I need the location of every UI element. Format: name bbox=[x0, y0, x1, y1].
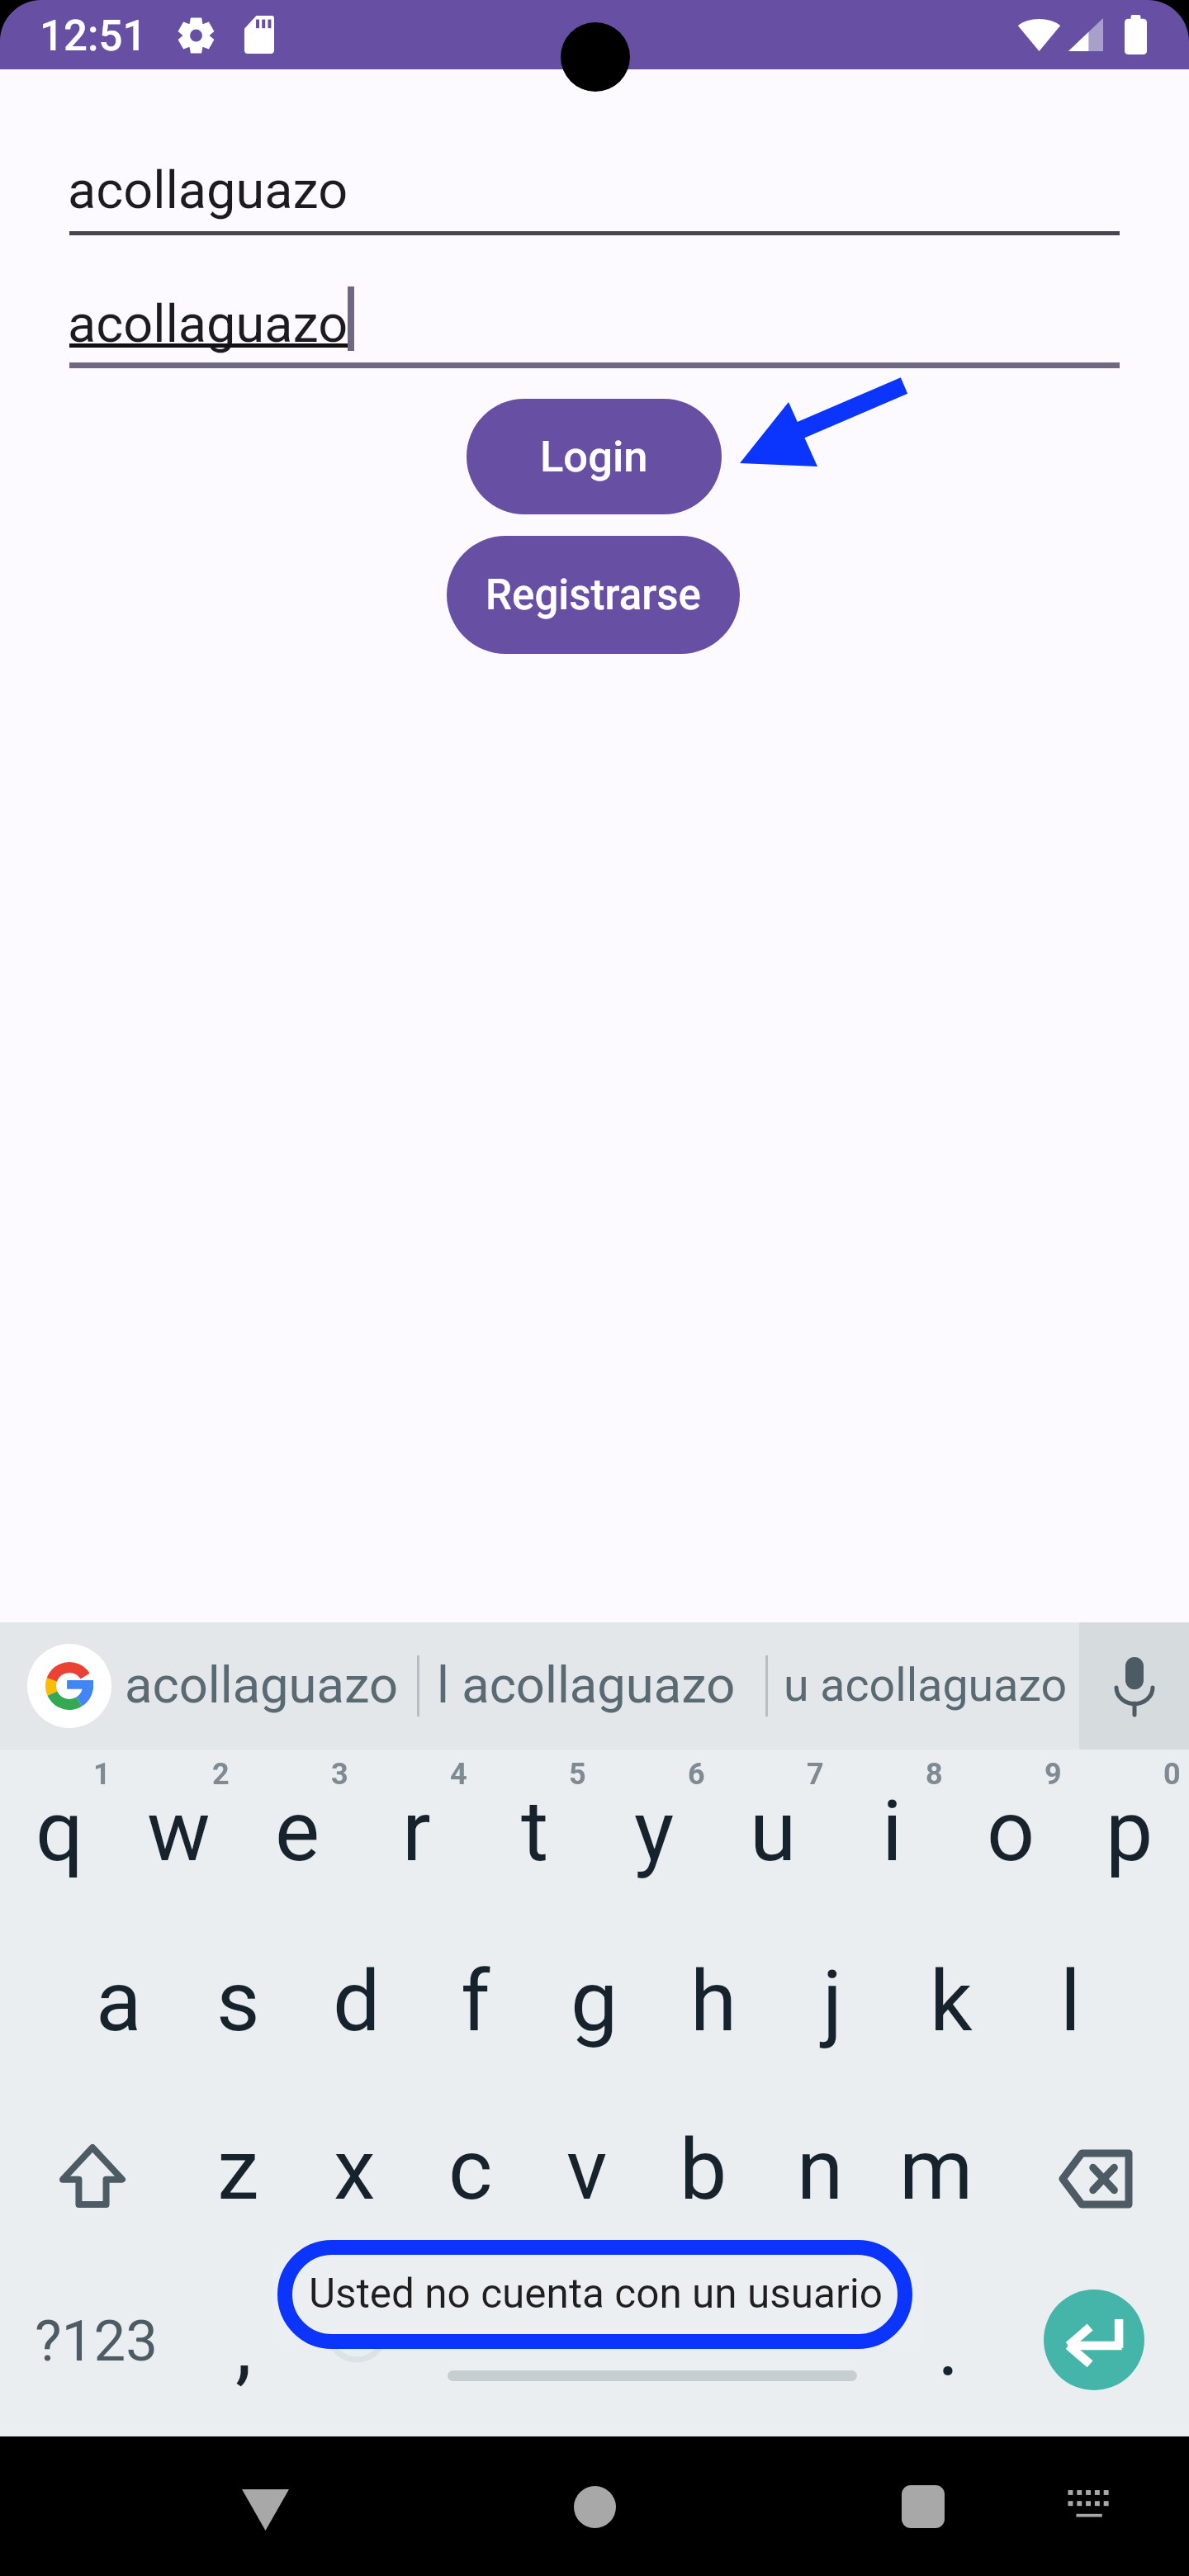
button[interactable]: m bbox=[877, 2122, 996, 2271]
button[interactable]: acollaguazo bbox=[107, 1622, 419, 1750]
staticText: x bbox=[334, 2120, 376, 2219]
staticText: 6 bbox=[688, 1757, 705, 1792]
button[interactable]: x bbox=[295, 2122, 414, 2271]
button[interactable]: h bbox=[654, 1953, 773, 2102]
staticText: k bbox=[930, 1952, 973, 2051]
button[interactable]: a bbox=[59, 1953, 178, 2102]
staticText: r bbox=[402, 1782, 431, 1881]
button[interactable]: . bbox=[898, 2296, 997, 2395]
staticText: l bbox=[1060, 1952, 1081, 2051]
button[interactable]: z bbox=[178, 2122, 297, 2271]
button[interactable]: Login bbox=[467, 399, 722, 514]
button[interactable]: ?123 bbox=[0, 2296, 186, 2412]
staticText: u acollaguazo bbox=[784, 1659, 1068, 1712]
button[interactable]: Space bbox=[448, 2370, 857, 2381]
button[interactable]: , bbox=[194, 2296, 293, 2395]
staticText: y bbox=[634, 1782, 675, 1881]
button[interactable]: 8 bbox=[832, 1783, 951, 1932]
staticText: ?123 bbox=[35, 2308, 158, 2375]
button[interactable]: g bbox=[535, 1953, 654, 2102]
button[interactable]: l acollaguazo bbox=[419, 1622, 767, 1750]
button[interactable]: 1 bbox=[0, 1783, 119, 1932]
staticText: 8 bbox=[926, 1757, 943, 1792]
staticText: v bbox=[566, 2120, 608, 2219]
staticText: h bbox=[690, 1952, 737, 2051]
staticText: acollaguazo bbox=[125, 1655, 399, 1715]
staticText: Registrarse bbox=[486, 571, 701, 620]
staticText: o bbox=[987, 1782, 1035, 1881]
staticText: d bbox=[333, 1952, 381, 2051]
button[interactable]: j bbox=[773, 1953, 892, 2102]
button[interactable]: c bbox=[411, 2122, 530, 2271]
button[interactable]: Shift bbox=[36, 2122, 154, 2271]
staticText: 4 bbox=[450, 1757, 467, 1792]
staticText: t bbox=[521, 1782, 549, 1881]
button[interactable]: l bbox=[1011, 1953, 1130, 2102]
staticText: 3 bbox=[331, 1757, 348, 1792]
staticText: f bbox=[461, 1952, 490, 2051]
staticText: p bbox=[1106, 1782, 1153, 1881]
staticText: Usted no cuenta con un usuario bbox=[309, 2270, 883, 2318]
button[interactable]: b bbox=[644, 2122, 763, 2271]
button[interactable]: Recent apps bbox=[874, 2457, 973, 2556]
button[interactable]: 2 bbox=[119, 1783, 238, 1932]
button[interactable]: u acollaguazo bbox=[765, 1622, 1078, 1750]
staticText: acollaguazo bbox=[68, 160, 348, 221]
button[interactable]: 9 bbox=[951, 1783, 1070, 1932]
staticText: s bbox=[216, 1952, 260, 2051]
button[interactable]: 7 bbox=[713, 1783, 832, 1932]
button[interactable]: f bbox=[416, 1953, 535, 2102]
button[interactable]: Backspace bbox=[1034, 2122, 1153, 2271]
button[interactable]: 4 bbox=[357, 1783, 476, 1932]
staticText: l acollaguazo bbox=[437, 1655, 736, 1715]
staticText: i bbox=[882, 1782, 902, 1881]
button[interactable]: d bbox=[297, 1953, 416, 2102]
button[interactable]: n bbox=[760, 2122, 879, 2271]
staticText: b bbox=[680, 2120, 727, 2219]
staticText: . bbox=[937, 2296, 959, 2395]
button[interactable]: Enter bbox=[1044, 2290, 1144, 2390]
staticText: q bbox=[36, 1782, 83, 1881]
button[interactable]: 0 bbox=[1070, 1783, 1189, 1932]
button[interactable]: Home bbox=[545, 2457, 644, 2556]
staticText: g bbox=[571, 1952, 618, 2051]
button[interactable]: s bbox=[178, 1953, 297, 2102]
staticText: m bbox=[899, 2120, 973, 2219]
staticText: z bbox=[217, 2120, 259, 2219]
staticText: n bbox=[797, 2120, 844, 2219]
staticText: 12:51 bbox=[40, 12, 147, 61]
staticText: , bbox=[235, 2296, 253, 2395]
button[interactable]: Voice input bbox=[1079, 1622, 1189, 1750]
button[interactable]: 6 bbox=[594, 1783, 713, 1932]
staticText: c bbox=[448, 2120, 493, 2219]
staticText: j bbox=[822, 1952, 843, 2051]
staticText: 7 bbox=[807, 1757, 824, 1792]
staticText: 0 bbox=[1163, 1757, 1181, 1792]
button[interactable]: 3 bbox=[238, 1783, 357, 1932]
staticText: acollaguazo bbox=[68, 294, 348, 355]
staticText: 5 bbox=[569, 1757, 586, 1792]
button[interactable]: v bbox=[528, 2122, 647, 2271]
staticText: e bbox=[275, 1782, 320, 1881]
button[interactable]: Switch keyboard bbox=[1039, 2457, 1138, 2556]
button[interactable]: Back bbox=[216, 2457, 315, 2556]
button[interactable]: k bbox=[892, 1953, 1011, 2102]
staticText: 1 bbox=[93, 1757, 111, 1792]
button[interactable]: Registrarse bbox=[447, 536, 740, 654]
staticText: a bbox=[96, 1952, 142, 2051]
staticText: w bbox=[147, 1782, 211, 1881]
button[interactable]: Google bbox=[27, 1644, 111, 1728]
staticText: u bbox=[750, 1782, 797, 1881]
staticText: 9 bbox=[1045, 1757, 1062, 1792]
button[interactable]: 5 bbox=[476, 1783, 594, 1932]
staticText: 2 bbox=[212, 1757, 230, 1792]
staticText: Login bbox=[540, 431, 648, 482]
